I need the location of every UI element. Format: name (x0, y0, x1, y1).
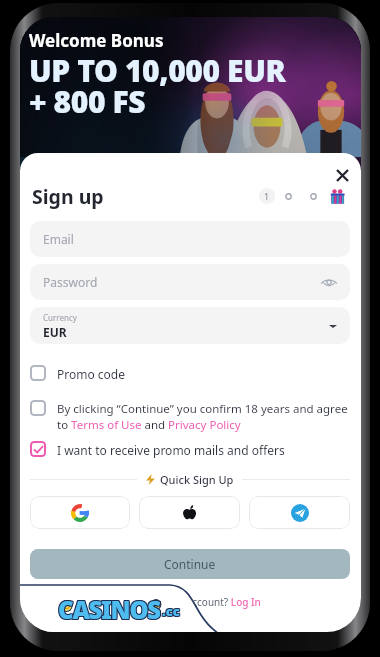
staticText: .cc (161, 603, 179, 621)
staticText: Currency (43, 312, 77, 323)
staticText: Quick Sign Up (160, 472, 234, 487)
button[interactable]: I want to receive promo mails and offers (30, 441, 350, 457)
staticText: CASINOS (57, 593, 159, 619)
staticText: Sign up (32, 183, 104, 210)
staticText: .cc (163, 601, 181, 619)
staticText: CASINOS (58, 592, 160, 618)
staticText: .cc (163, 602, 181, 620)
button[interactable]: Promo code (30, 365, 350, 381)
staticText: .cc (161, 602, 179, 620)
staticText: .cc (162, 602, 180, 620)
staticText: .cc (162, 603, 180, 621)
button[interactable]: Currency (30, 307, 350, 344)
staticText: CASINOS (59, 592, 161, 618)
button[interactable]: Sign up with Google (30, 496, 130, 529)
staticText: .cc (163, 603, 181, 621)
staticText: + 800 FS (29, 81, 146, 122)
staticText: Continue (164, 556, 216, 572)
staticText: CASINOS (59, 593, 161, 619)
other: Show password (43, 264, 337, 300)
staticText: CASINOS (57, 592, 159, 618)
staticText: CASINOS (58, 594, 160, 620)
staticText: CASINOS (57, 594, 159, 620)
staticText: Already have an account? Log In (109, 595, 261, 609)
staticText: 1 (264, 190, 270, 202)
button[interactable]: Password (30, 264, 350, 300)
button[interactable]: Continue (30, 549, 350, 579)
staticText: .cc (161, 601, 179, 619)
staticText: EUR (43, 324, 67, 340)
staticText: Email (43, 231, 74, 247)
button[interactable]: Email (30, 221, 350, 257)
button[interactable]: Sign up with Telegram (249, 496, 350, 529)
staticText: Welcome Bonus (29, 29, 164, 52)
staticText: Promo code (57, 366, 126, 382)
staticText: CASINOS (58, 593, 160, 619)
staticText: UP TO 10,000 EUR (29, 50, 286, 91)
button[interactable]: Sign up with Apple (139, 496, 240, 529)
button[interactable]: Close (330, 163, 354, 187)
button[interactable]: By clicking “Continue” you confirm 18 ye… (30, 400, 350, 431)
staticText: I want to receive promo mails and offers (57, 442, 285, 458)
staticText: CASINOS (59, 594, 161, 620)
staticText: By clicking “Continue” you confirm 18 ye… (57, 401, 350, 432)
staticText: .cc (162, 601, 180, 619)
staticText: Password (43, 274, 98, 290)
